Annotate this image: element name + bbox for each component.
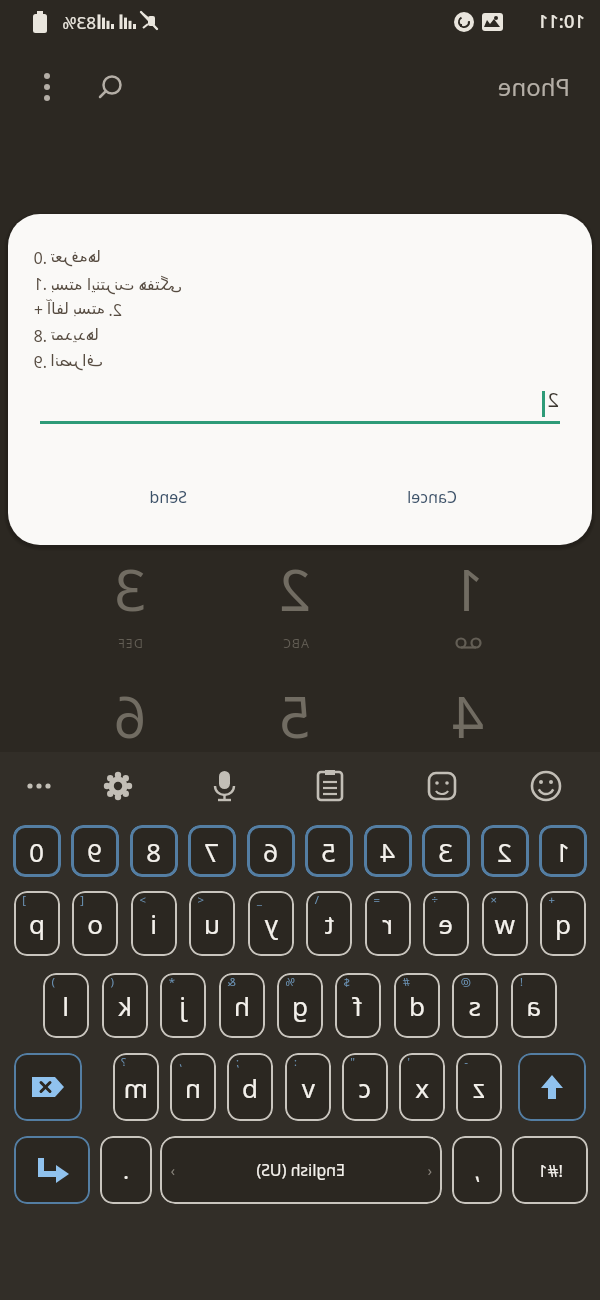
button[interactable]: English (US) bbox=[160, 1136, 442, 1204]
staticText: < bbox=[197, 892, 204, 908]
button[interactable]: q bbox=[540, 891, 586, 956]
staticText: : bbox=[293, 1054, 297, 1070]
button[interactable] bbox=[17, 764, 61, 808]
staticText: 2 bbox=[547, 386, 559, 413]
staticText: . bbox=[123, 1155, 129, 1185]
button[interactable]: s bbox=[452, 973, 498, 1038]
staticText: j bbox=[179, 988, 186, 1023]
staticText: , bbox=[474, 1155, 480, 1185]
staticText: 2 bbox=[497, 834, 512, 869]
button[interactable] bbox=[203, 764, 247, 808]
button[interactable]: j bbox=[160, 973, 206, 1038]
staticText: .0 bbox=[33, 247, 47, 269]
staticText: › bbox=[170, 1161, 175, 1180]
staticText: & bbox=[227, 974, 236, 990]
staticText: + bbox=[548, 892, 555, 908]
staticText: % bbox=[285, 974, 295, 990]
button[interactable]: 5 bbox=[305, 825, 353, 877]
button[interactable] bbox=[524, 764, 568, 808]
button[interactable]: 6 bbox=[247, 825, 295, 877]
button[interactable]: d bbox=[394, 973, 440, 1038]
staticText: k bbox=[118, 988, 132, 1023]
staticText: !#1 bbox=[537, 1159, 563, 1182]
button[interactable] bbox=[88, 64, 132, 108]
staticText: بسته bbox=[72, 299, 105, 318]
staticText: 4 bbox=[451, 678, 484, 754]
button[interactable]: u bbox=[189, 891, 235, 956]
staticText: z bbox=[472, 1070, 485, 1105]
staticText: 3 bbox=[438, 834, 453, 869]
button[interactable]: e bbox=[423, 891, 469, 956]
button[interactable]: o bbox=[72, 891, 118, 956]
button[interactable]: 0 bbox=[13, 825, 61, 877]
button[interactable]: 4 bbox=[364, 825, 412, 877]
button[interactable]: 9 bbox=[71, 825, 119, 877]
staticText: ABC bbox=[281, 635, 309, 652]
button[interactable]: c bbox=[342, 1053, 388, 1121]
button[interactable]: k bbox=[102, 973, 148, 1038]
button[interactable]: l bbox=[43, 973, 89, 1038]
staticText: تمدیدها bbox=[50, 325, 99, 344]
button[interactable]: w bbox=[482, 891, 528, 956]
staticText: × bbox=[490, 892, 497, 908]
staticText: Cancel bbox=[407, 486, 457, 508]
button[interactable]: t bbox=[306, 891, 352, 956]
staticText: ‹ bbox=[427, 1161, 432, 1180]
button[interactable]: 1 bbox=[539, 825, 587, 877]
staticText: انصراف bbox=[50, 351, 103, 370]
button[interactable] bbox=[14, 1053, 82, 1121]
button[interactable]: g bbox=[277, 973, 323, 1038]
staticText: v bbox=[301, 1070, 315, 1105]
button[interactable] bbox=[308, 764, 352, 808]
staticText: 5 bbox=[278, 678, 311, 754]
button[interactable]: Send bbox=[33, 457, 303, 537]
button[interactable]: !#1 bbox=[512, 1136, 588, 1204]
staticText: ' bbox=[407, 1054, 410, 1070]
button[interactable]: i bbox=[131, 891, 177, 956]
button[interactable]: , bbox=[452, 1136, 502, 1204]
button[interactable]: . bbox=[100, 1136, 152, 1204]
staticText: DEF bbox=[117, 635, 143, 652]
staticText: s bbox=[468, 988, 481, 1023]
button[interactable]: f bbox=[335, 973, 381, 1038]
staticText: \ bbox=[314, 892, 319, 908]
button[interactable]: r bbox=[365, 891, 411, 956]
button[interactable]: 8 bbox=[130, 825, 178, 877]
button[interactable]: z bbox=[456, 1053, 502, 1121]
button[interactable] bbox=[24, 64, 68, 108]
staticText: x bbox=[415, 1070, 429, 1105]
button[interactable]: m bbox=[113, 1053, 159, 1121]
button[interactable]: p bbox=[14, 891, 60, 956]
staticText: e bbox=[438, 906, 453, 941]
button[interactable]: Cancel bbox=[297, 457, 567, 537]
staticText: * bbox=[168, 974, 175, 990]
staticText: - bbox=[464, 1054, 468, 1070]
staticText: 3 bbox=[113, 551, 146, 627]
staticText: m bbox=[123, 1070, 148, 1105]
button[interactable]: y bbox=[248, 891, 294, 956]
staticText: ] bbox=[22, 892, 26, 908]
staticText: r bbox=[382, 906, 393, 941]
staticText: i bbox=[150, 906, 157, 941]
button[interactable]: h bbox=[219, 973, 265, 1038]
staticText: 5 bbox=[321, 834, 336, 869]
button[interactable] bbox=[14, 1136, 90, 1204]
button[interactable]: 3 bbox=[422, 825, 470, 877]
staticText: p bbox=[29, 906, 45, 941]
button[interactable]: x bbox=[399, 1053, 445, 1121]
button[interactable]: 2 bbox=[481, 825, 529, 877]
staticText: 0 bbox=[29, 834, 44, 869]
staticText: + bbox=[33, 299, 43, 321]
button[interactable]: v bbox=[285, 1053, 331, 1121]
staticText: 4 bbox=[380, 834, 395, 869]
staticText: " bbox=[350, 1054, 355, 1070]
button[interactable]: a bbox=[511, 973, 557, 1038]
staticText: .9 bbox=[33, 351, 47, 373]
button[interactable] bbox=[518, 1053, 586, 1121]
button[interactable]: 7 bbox=[188, 825, 236, 877]
button[interactable] bbox=[420, 764, 464, 808]
button[interactable]: n bbox=[170, 1053, 216, 1121]
button[interactable] bbox=[96, 764, 140, 808]
button[interactable]: b bbox=[227, 1053, 273, 1121]
staticText: l bbox=[62, 988, 69, 1023]
